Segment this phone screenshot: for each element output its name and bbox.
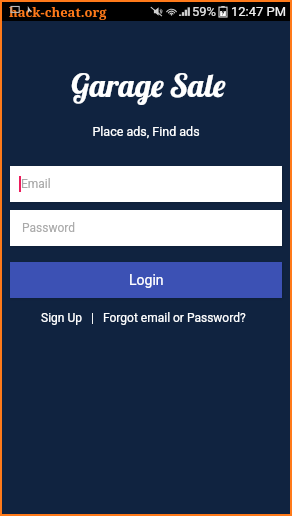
staticText: | — [82, 311, 103, 325]
button[interactable]: Forgot email or Password? — [103, 311, 246, 325]
staticText: Email — [21, 177, 51, 191]
button[interactable]: Sign Up — [41, 311, 82, 325]
staticText: Place ads, Find ads — [2, 124, 290, 139]
staticText: hack-cheat.org — [9, 3, 107, 21]
staticText: Forgot email or Password? — [103, 311, 246, 325]
staticText: Login — [129, 272, 164, 288]
button[interactable]: Password — [10, 210, 282, 246]
staticText: Garage Sale — [4, 65, 292, 105]
staticText: Password — [22, 221, 76, 235]
staticText: 59% — [192, 4, 217, 19]
staticText: Sign Up — [41, 311, 82, 325]
staticText: 12:47 PM — [231, 4, 287, 19]
button[interactable]: Email — [10, 166, 282, 202]
button[interactable]: Login — [10, 262, 282, 298]
